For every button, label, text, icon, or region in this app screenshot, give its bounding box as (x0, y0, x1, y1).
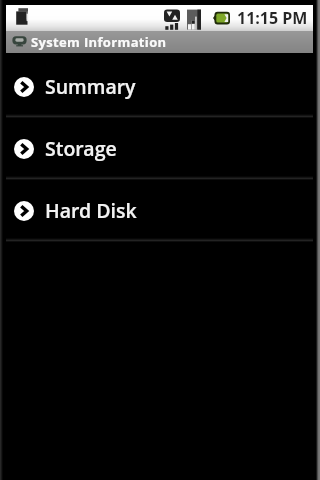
button[interactable]: Hard Disk (6, 180, 313, 242)
button[interactable]: Summary (6, 56, 313, 118)
button[interactable]: Storage (6, 118, 313, 180)
staticText: Hard Disk (45, 197, 137, 224)
staticText: Storage (45, 135, 117, 162)
staticText: System Information (31, 33, 167, 51)
staticText: 11:15 PM (237, 7, 308, 29)
staticText: Summary (45, 73, 136, 100)
